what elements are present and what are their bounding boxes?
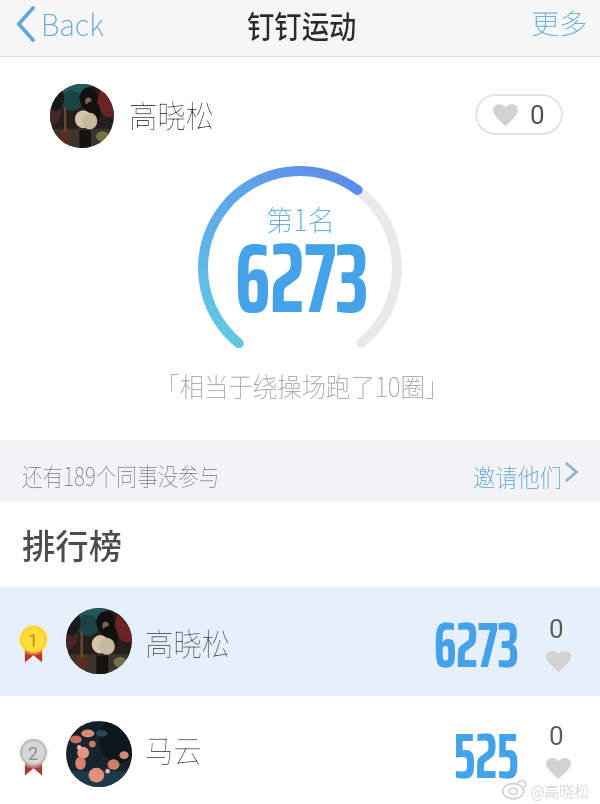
staticText: 第1名	[266, 197, 336, 239]
button[interactable]: 2	[0, 696, 600, 804]
staticText: 马云	[145, 726, 202, 772]
staticText: Back	[41, 2, 104, 43]
staticText: 525	[454, 706, 519, 804]
button[interactable]: Back	[0, 0, 116, 52]
staticText: 「相当于绕操场跑了10圈」	[155, 366, 450, 405]
button[interactable]: 1	[0, 587, 600, 696]
staticText: 0	[549, 721, 564, 751]
staticText: 还有189个同事没参与	[22, 457, 220, 493]
button[interactable]: 更多	[514, 0, 600, 49]
staticText: 高晓松	[129, 91, 215, 137]
staticText: 高晓松	[145, 619, 231, 665]
staticText: 排行榜	[22, 520, 122, 569]
staticText: 邀请他们	[473, 458, 563, 494]
staticText: 1	[28, 630, 39, 651]
button[interactable]: 还有189个同事没参与	[0, 440, 600, 502]
staticText: 更多	[531, 2, 588, 39]
staticText: 钉钉运动	[247, 2, 356, 47]
staticText: 0	[530, 100, 545, 130]
button[interactable]: 0	[475, 94, 563, 135]
staticText: 0	[549, 614, 564, 644]
other: Invite colleagues	[565, 462, 578, 482]
staticText: 6273	[235, 200, 368, 356]
staticText: @高晓松	[531, 778, 590, 803]
staticText: 2	[28, 743, 39, 764]
staticText: 6273	[434, 595, 519, 694]
